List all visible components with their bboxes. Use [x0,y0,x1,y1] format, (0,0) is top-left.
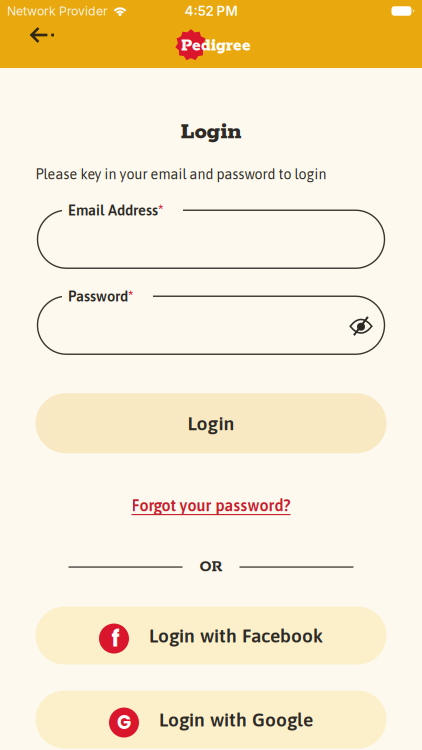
staticText: Login with Facebook [149,624,323,646]
staticText: Login [180,118,241,146]
staticText: Pedigree [181,36,251,56]
staticText: G [117,709,131,736]
button[interactable]: Email Address [37,201,384,268]
staticText: Login [187,412,234,434]
staticText: Network Provider [7,4,108,18]
staticText: * [158,202,163,218]
button[interactable]: Show password [348,315,373,335]
staticText: * [128,288,133,304]
staticText: Email Address [68,202,158,218]
staticText: 4:52 PM [184,3,237,19]
button[interactable]: G [35,690,386,748]
button[interactable]: Back [0,22,55,48]
button[interactable]: Login [35,393,386,453]
staticText: OR [199,558,222,577]
button[interactable]: f [35,606,386,664]
staticText: Please key in your email and password to… [35,166,326,182]
staticText: Password [68,288,128,304]
button[interactable]: Password [37,287,384,354]
button[interactable]: Forgot your password? [131,496,290,514]
staticText: Login with Google [159,708,313,730]
staticText: Forgot your password? [131,496,290,514]
staticText: f [111,623,119,654]
